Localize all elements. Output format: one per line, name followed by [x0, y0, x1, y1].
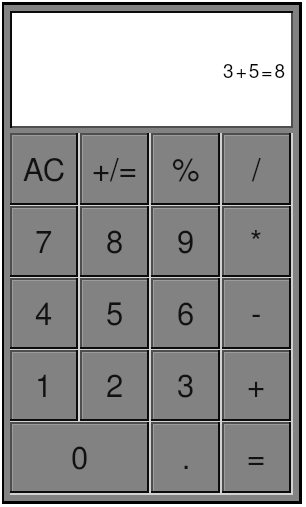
staticText: * [250, 228, 263, 259]
staticText: . [182, 444, 190, 475]
staticText: = [247, 444, 266, 475]
button[interactable]: 2 [80, 350, 149, 421]
staticText: 3+5=8 [223, 63, 287, 82]
button[interactable]: 9 [151, 206, 220, 277]
button[interactable]: - [222, 278, 291, 349]
button[interactable]: . [151, 422, 220, 493]
staticText: 0 [71, 444, 89, 475]
staticText: 3 [177, 372, 195, 403]
button[interactable]: 8 [80, 206, 149, 277]
button[interactable]: 0 [10, 422, 149, 493]
button[interactable]: +/= [80, 133, 149, 205]
button[interactable]: 5 [80, 278, 149, 349]
staticText: 2 [106, 372, 124, 403]
staticText: % [172, 156, 200, 187]
staticText: / [252, 156, 261, 187]
staticText: 6 [177, 300, 195, 331]
button[interactable]: 7 [10, 206, 78, 277]
button[interactable]: 3 [151, 350, 220, 421]
button[interactable]: + [222, 350, 291, 421]
button[interactable]: 6 [151, 278, 220, 349]
button[interactable]: AC [10, 133, 78, 205]
staticText: - [251, 300, 262, 331]
staticText: 1 [35, 372, 53, 403]
staticText: 4 [35, 300, 53, 331]
staticText: AC [23, 156, 66, 187]
button[interactable]: / [222, 133, 291, 205]
button[interactable]: * [222, 206, 291, 277]
staticText: + [247, 372, 266, 403]
staticText: 8 [106, 228, 124, 259]
button[interactable]: % [151, 133, 220, 205]
button[interactable]: = [222, 422, 291, 493]
staticText: 9 [177, 228, 195, 259]
staticText: +/= [92, 156, 137, 187]
staticText: 5 [106, 300, 124, 331]
staticText: 7 [35, 228, 53, 259]
button[interactable]: 1 [10, 350, 78, 421]
button[interactable]: 4 [10, 278, 78, 349]
